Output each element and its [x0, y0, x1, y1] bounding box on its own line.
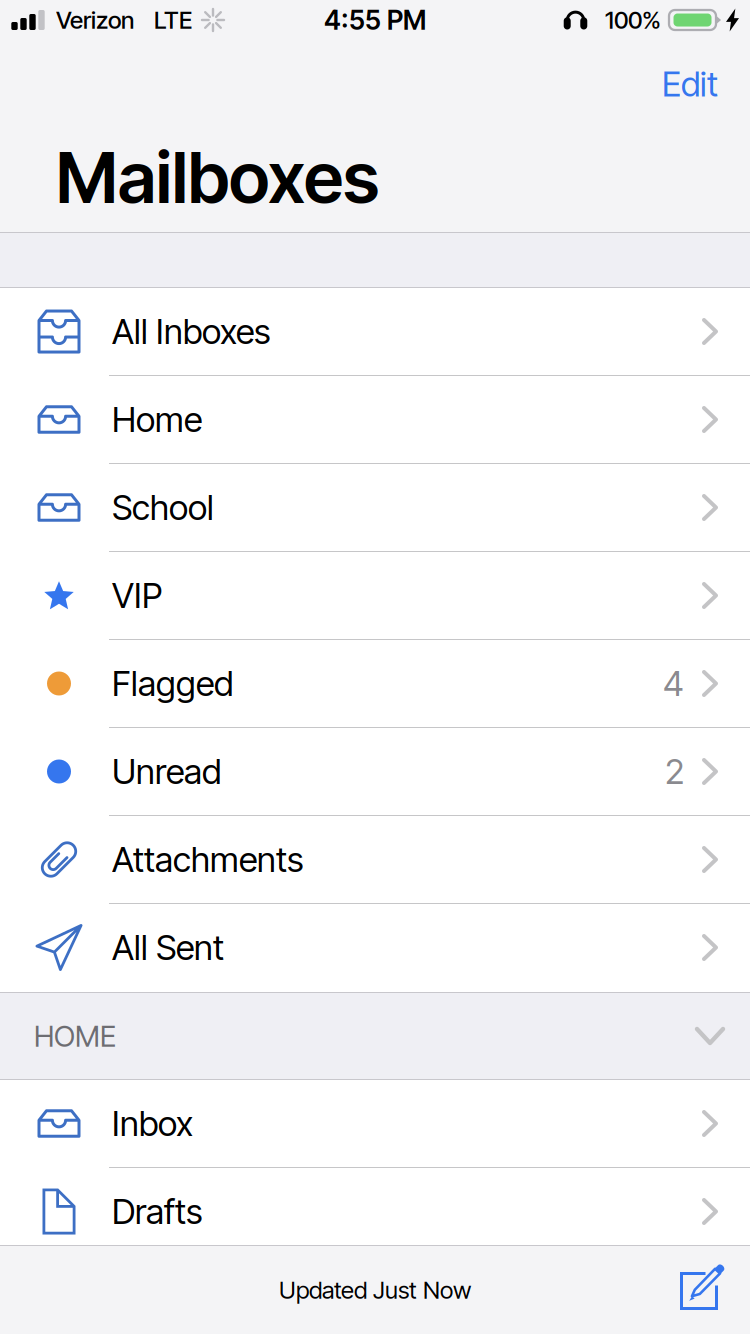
staticText: Edit [662, 63, 718, 105]
staticText: School [112, 486, 214, 528]
staticText: All Inboxes [112, 310, 270, 352]
staticText: Drafts [112, 1190, 202, 1232]
staticText: Mailboxes [56, 134, 379, 220]
button[interactable]: Compose [660, 1255, 750, 1325]
button[interactable]: HOME [0, 993, 750, 1079]
staticText: Unread [112, 750, 221, 792]
button[interactable]: All Sent [0, 904, 750, 992]
staticText: Updated Just Now [279, 1275, 471, 1304]
button[interactable]: Drafts [0, 1168, 750, 1256]
button[interactable]: VIP [0, 552, 750, 640]
staticText: All Sent [112, 926, 224, 968]
staticText: Flagged [112, 662, 233, 704]
staticText: LTE [154, 5, 192, 34]
staticText: 4 [663, 662, 684, 704]
button[interactable]: Flagged [0, 640, 750, 728]
button[interactable]: Inbox [0, 1080, 750, 1168]
button[interactable]: School [0, 464, 750, 552]
staticText: Verizon [56, 5, 134, 34]
staticText: 4:55 PM [324, 4, 426, 36]
staticText: HOME [34, 1018, 116, 1054]
staticText: 2 [665, 750, 684, 792]
staticText: VIP [112, 574, 162, 616]
staticText: Inbox [112, 1102, 193, 1144]
button[interactable]: Attachments [0, 816, 750, 904]
staticText: Home [112, 398, 202, 440]
button[interactable]: Unread [0, 728, 750, 816]
staticText: 100% [605, 5, 661, 34]
button[interactable]: Edit [630, 47, 750, 121]
button[interactable]: Home [0, 376, 750, 464]
staticText: Attachments [112, 838, 303, 880]
button[interactable]: All Inboxes [0, 288, 750, 376]
